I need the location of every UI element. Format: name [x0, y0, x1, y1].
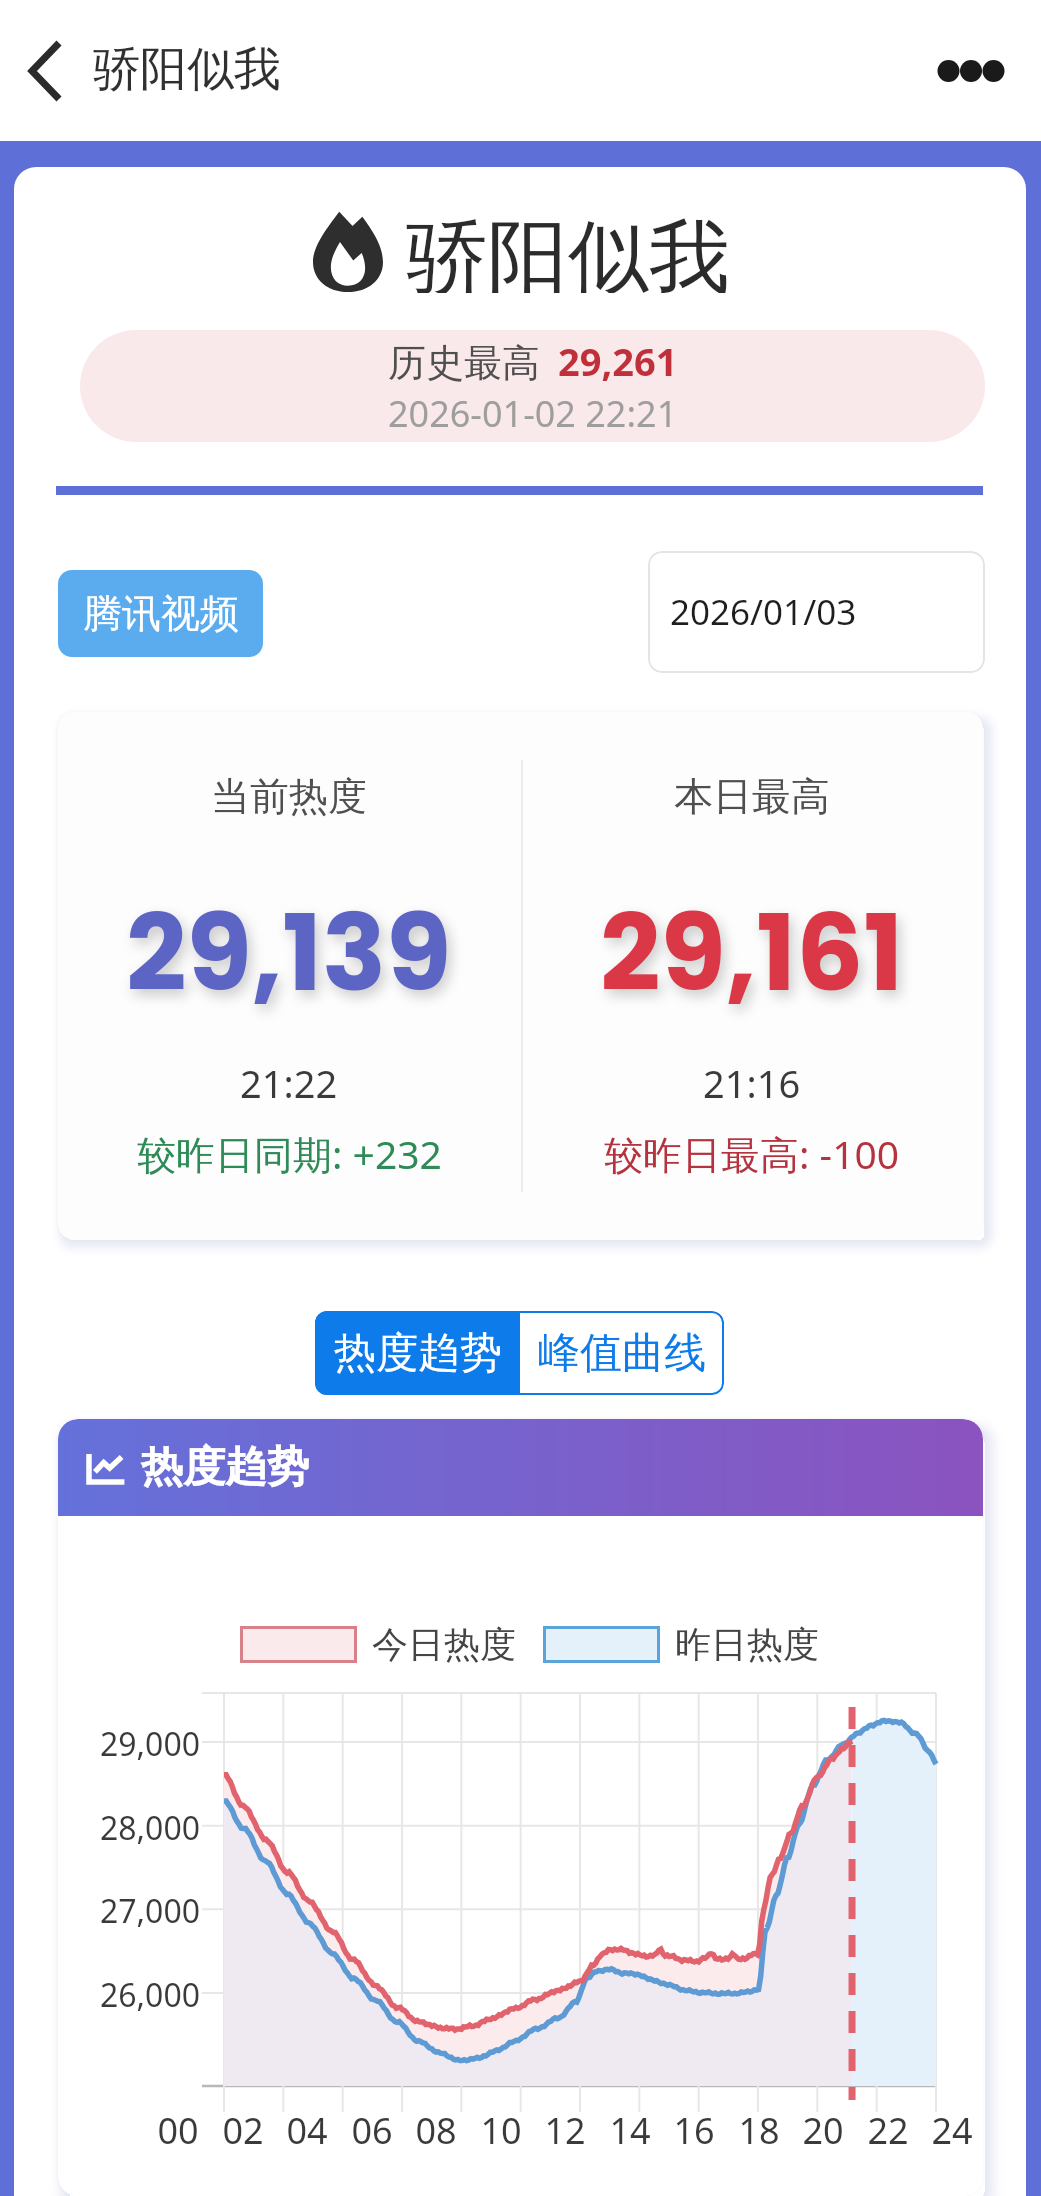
staticText: 27,000: [67, 1889, 200, 1933]
staticText: 29,139: [126, 879, 452, 1027]
staticText: 腾讯视频: [83, 589, 239, 638]
button[interactable]: Back: [8, 33, 84, 109]
staticText: 06: [340, 2106, 404, 2155]
staticText: 较昨日同期: +232: [137, 1127, 442, 1180]
button[interactable]: More options: [925, 36, 1017, 106]
staticText: 29,161: [600, 879, 904, 1027]
staticText: 骄阳似我: [93, 40, 281, 99]
staticText: 2026/01/03: [670, 588, 857, 636]
staticText: 昨日热度: [675, 1622, 819, 1666]
staticText: 当前热度: [211, 772, 367, 821]
button[interactable]: 热度趋势: [315, 1311, 520, 1395]
button[interactable]: 峰值曲线: [520, 1311, 724, 1395]
staticText: 29,000: [67, 1722, 200, 1766]
staticText: 20: [791, 2106, 855, 2155]
staticText: 14: [598, 2106, 662, 2155]
staticText: 本日最高: [674, 772, 830, 821]
staticText: 00: [146, 2106, 210, 2155]
staticText: 热度趋势: [334, 1327, 502, 1380]
button[interactable]: 腾讯视频: [58, 570, 263, 657]
staticText: 24: [920, 2106, 983, 2155]
staticText: 10: [469, 2106, 533, 2155]
staticText: 骄阳似我: [406, 207, 730, 293]
staticText: 28,000: [67, 1806, 200, 1850]
staticText: 热度趋势: [141, 1441, 309, 1494]
button[interactable]: 2026/01/03: [648, 551, 985, 673]
staticText: 21:22: [240, 1057, 338, 1109]
staticText: 12: [533, 2106, 597, 2155]
staticText: 22: [856, 2106, 920, 2155]
staticText: 较昨日最高: -100: [604, 1127, 900, 1180]
staticText: 16: [662, 2106, 726, 2155]
staticText: 02: [211, 2106, 275, 2155]
staticText: 今日热度: [372, 1622, 516, 1666]
staticText: 26,000: [67, 1973, 200, 2017]
staticText: 18: [727, 2106, 791, 2155]
staticText: 历史最高: [388, 339, 540, 387]
staticText: 08: [404, 2106, 468, 2155]
staticText: 21:16: [703, 1057, 801, 1109]
staticText: 2026-01-02 22:21: [388, 389, 678, 438]
staticText: 峰值曲线: [538, 1327, 706, 1380]
staticText: 29,261: [558, 335, 678, 387]
staticText: 04: [275, 2106, 339, 2155]
